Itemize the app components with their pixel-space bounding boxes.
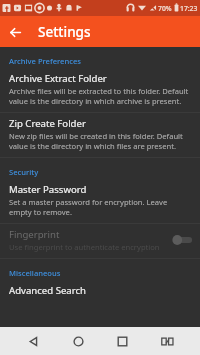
staticText: New zip files will be created in this fo…: [9, 131, 191, 151]
button[interactable]: Fingerprint toggle: [170, 231, 196, 249]
button[interactable]: Recent apps: [106, 327, 138, 355]
staticText: Fingerprint: [9, 228, 60, 241]
button[interactable]: Zip Create Folder: [0, 113, 200, 157]
button[interactable]: Back: [17, 327, 49, 355]
button[interactable]: Advanced Search: [0, 280, 200, 303]
staticText: Zip Create Folder: [9, 117, 86, 130]
staticText: Use fingerprint to authenticate encrypti…: [9, 242, 160, 252]
staticText: Archive Preferences: [9, 56, 81, 66]
staticText: Miscellaneous: [9, 268, 61, 278]
staticText: Security: [9, 167, 39, 177]
staticText: Master Password: [9, 183, 87, 196]
staticText: 17:23: [180, 4, 198, 13]
staticText: Settings: [38, 23, 91, 41]
staticText: Archive Extract Folder: [9, 72, 107, 85]
staticText: Advanced Search: [9, 284, 86, 297]
staticText: 70%: [158, 4, 172, 13]
button[interactable]: Fingerprint: [0, 224, 200, 258]
button[interactable]: Home: [62, 327, 94, 355]
staticText: Set a master password for encryption. Le…: [9, 197, 191, 217]
button[interactable]: Archive Extract Folder: [0, 68, 200, 112]
button[interactable]: Navigate up: [4, 21, 26, 43]
staticText: Archive files will be extracted to this …: [9, 86, 191, 106]
button[interactable]: Master Password: [0, 179, 200, 223]
button[interactable]: Split screen: [151, 327, 183, 355]
